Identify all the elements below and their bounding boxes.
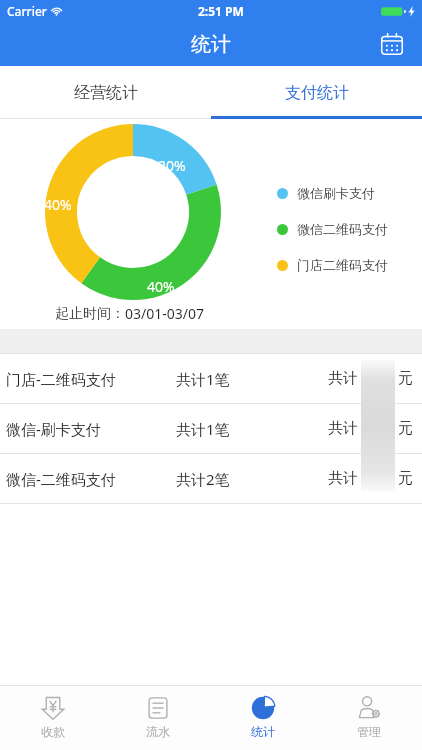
staticText: 元 bbox=[398, 369, 413, 388]
staticText: 共计1笔 bbox=[176, 419, 230, 439]
staticText: 40% bbox=[147, 277, 175, 296]
staticText: 收款 bbox=[41, 724, 65, 739]
staticText: 共计 bbox=[328, 369, 358, 388]
button[interactable]: 微信-刷卡支付 bbox=[0, 404, 422, 453]
staticText: 元 bbox=[398, 469, 413, 488]
staticText: 共计1笔 bbox=[176, 369, 230, 389]
staticText: 门店-二维码支付 bbox=[6, 369, 116, 389]
staticText: 门店二维码支付 bbox=[297, 257, 388, 273]
button[interactable]: 流水 bbox=[105, 685, 210, 750]
staticText: 2:51 PM bbox=[198, 3, 244, 19]
staticText: 微信刷卡支付 bbox=[297, 185, 375, 201]
button[interactable]: 门店-二维码支付 bbox=[0, 354, 422, 403]
button[interactable]: 微信-二维码支付 bbox=[0, 454, 422, 503]
staticText: 管理 bbox=[357, 724, 381, 739]
staticText: 支付统计 bbox=[285, 83, 349, 103]
staticText: 流水 bbox=[146, 724, 170, 739]
button[interactable]: 统计 bbox=[210, 685, 316, 750]
staticText: 经营统计 bbox=[74, 83, 138, 103]
staticText: 03/01-03/07 bbox=[125, 304, 204, 323]
staticText: 微信二维码支付 bbox=[297, 221, 388, 237]
button[interactable]: 收款 bbox=[0, 685, 105, 750]
staticText: 微信-刷卡支付 bbox=[6, 419, 101, 439]
button[interactable]: 经营统计 bbox=[0, 66, 211, 119]
staticText: 元 bbox=[398, 419, 413, 438]
staticText: 共计 bbox=[328, 419, 358, 438]
button[interactable]: 支付统计 bbox=[211, 66, 422, 119]
staticText: 统计 bbox=[251, 724, 275, 739]
staticText: 起止时间： bbox=[55, 305, 125, 323]
staticText: Carrier bbox=[7, 3, 47, 19]
staticText: 共计2笔 bbox=[176, 469, 230, 489]
button[interactable]: Calendar bbox=[374, 26, 410, 62]
button[interactable]: 管理 bbox=[316, 685, 422, 750]
staticText: 40% bbox=[44, 195, 72, 214]
staticText: 微信-二维码支付 bbox=[6, 469, 116, 489]
staticText: 20% bbox=[158, 156, 186, 175]
staticText: 统计 bbox=[191, 32, 231, 57]
staticText: 共计 bbox=[328, 469, 358, 488]
